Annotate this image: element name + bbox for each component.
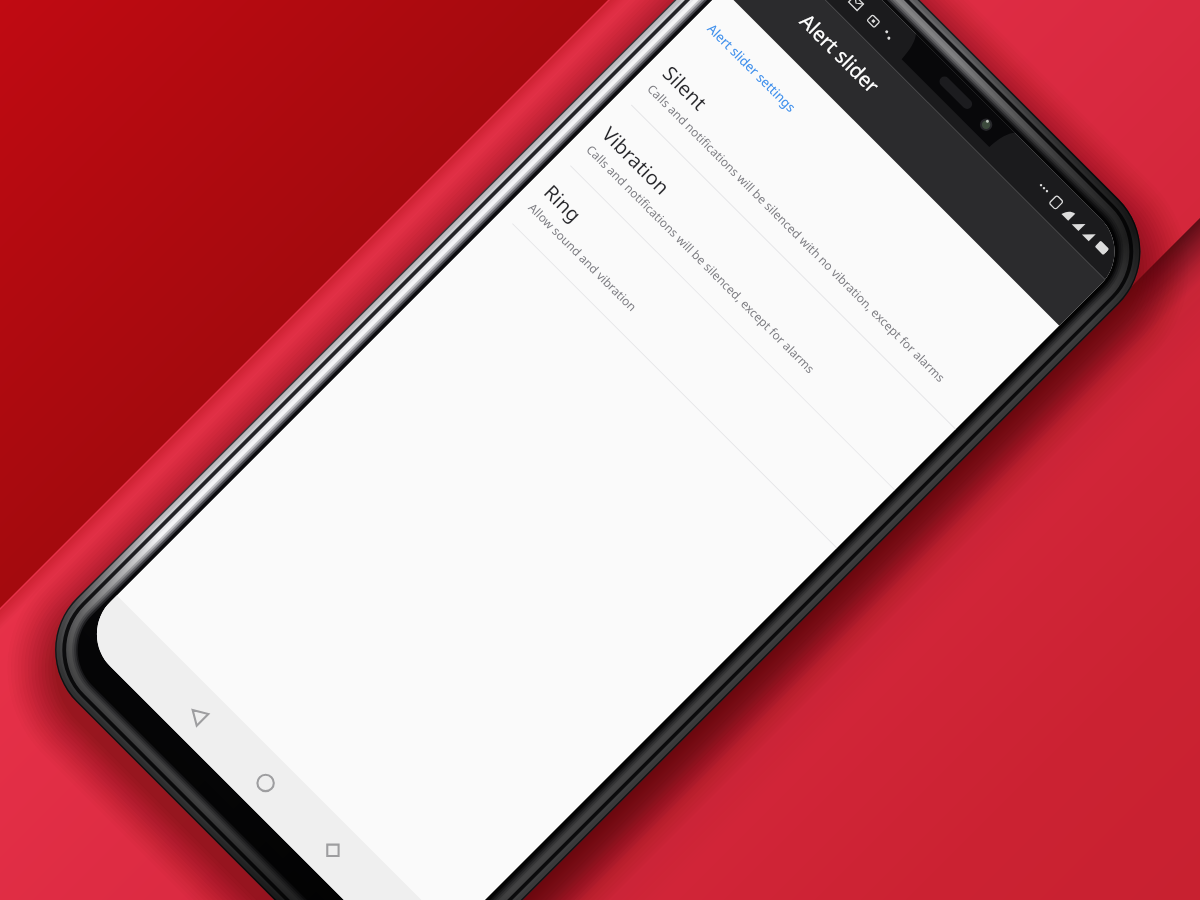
staticText: Vibration: [596, 121, 676, 201]
other: System navigation bar: [78, 595, 453, 900]
staticText: Silent: [657, 60, 714, 117]
button[interactable]: Vibration: [558, 95, 953, 491]
staticText: Alert slider: [794, 8, 885, 99]
staticText: Alert slider settings: [704, 20, 801, 117]
staticText: Ring: [538, 179, 588, 228]
button[interactable]: Silent: [619, 34, 1014, 430]
staticText: Calls and notifications will be silenced…: [583, 141, 919, 477]
staticText: Calls and notifications will be silenced…: [644, 80, 980, 416]
button[interactable]: Alert slider settings: [687, 3, 1045, 361]
button[interactable]: Ring: [500, 153, 895, 549]
staticText: Allow sound and vibration: [525, 199, 861, 535]
